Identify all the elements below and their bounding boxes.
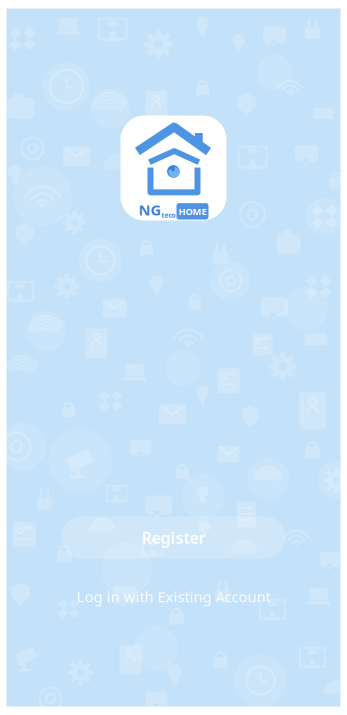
staticText: Log in with Existing Account [76,587,270,606]
staticText: HOME [178,205,206,217]
button[interactable]: Register [61,516,285,558]
staticText: Register [141,527,205,548]
button[interactable]: Log in with Existing Account [33,586,313,606]
staticText: NG [138,200,161,219]
staticText: teco [161,211,175,219]
